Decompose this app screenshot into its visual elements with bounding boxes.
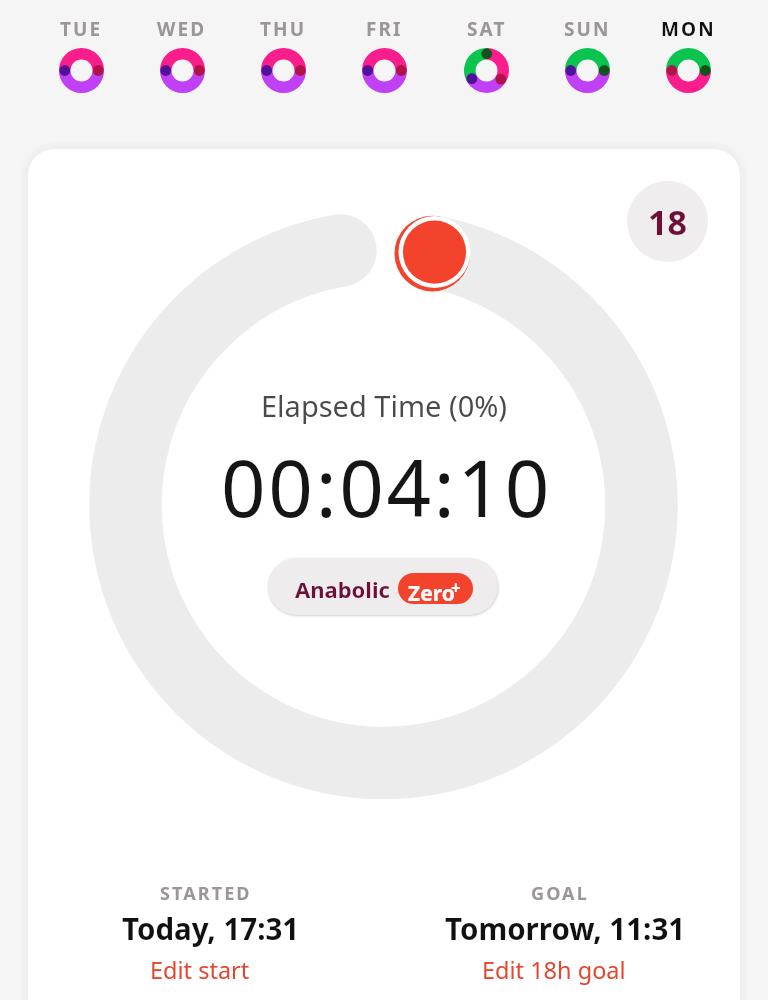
button[interactable]: SUN (537, 16, 637, 116)
staticText: TUE (60, 16, 103, 42)
button[interactable]: TUE (31, 16, 131, 116)
staticText: Elapsed Time (0%) (261, 386, 508, 425)
staticText: SAT (467, 16, 507, 42)
staticText: SUN (564, 16, 611, 42)
staticText: THU (260, 16, 307, 42)
staticText: FRI (366, 16, 403, 42)
button[interactable]: Anabolic (268, 558, 498, 615)
staticText: Edit 18h goal (482, 954, 626, 986)
staticText: GOAL (531, 881, 589, 906)
button[interactable]: SAT (436, 16, 536, 116)
staticText: + (451, 576, 461, 599)
staticText: Anabolic (295, 574, 390, 604)
staticText: Edit start (150, 954, 250, 986)
staticText: Zero (408, 579, 455, 604)
staticText: Tomorrow, 11:31 (445, 908, 686, 948)
staticText: Today, 17:31 (122, 908, 300, 948)
button[interactable]: WED (132, 16, 232, 116)
button[interactable]: MON (638, 16, 738, 116)
button[interactable]: FRI (334, 16, 434, 116)
button[interactable]: Adjust fast progress (397, 214, 473, 290)
staticText: 00:04:10 (221, 434, 553, 540)
button[interactable]: THU (233, 16, 333, 116)
staticText: 18 (648, 199, 687, 245)
button[interactable]: Edit start (142, 951, 258, 989)
staticText: MON (661, 16, 716, 42)
button[interactable]: 18 hour fast goal (627, 181, 708, 262)
button[interactable]: Edit 18h goal (474, 951, 634, 989)
staticText: WED (157, 16, 207, 42)
staticText: STARTED (160, 881, 252, 906)
